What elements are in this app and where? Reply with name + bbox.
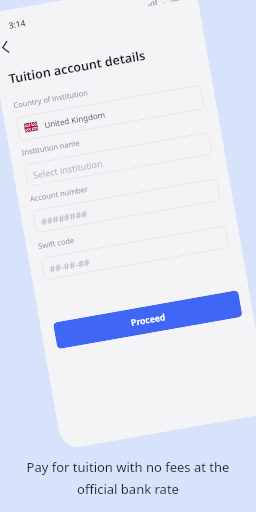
- button[interactable]: ########: [32, 178, 221, 233]
- staticText: Pay for tuition with no fees at the offi…: [0, 458, 256, 498]
- button[interactable]: Select institution: [24, 132, 213, 187]
- staticText: Proceed: [130, 311, 167, 329]
- staticText: Account number: [29, 184, 89, 204]
- staticText: ########: [40, 207, 88, 227]
- button[interactable]: United Kingdom: [15, 84, 205, 142]
- staticText: 3:14: [8, 17, 26, 32]
- button[interactable]: ##-##-##: [40, 225, 229, 280]
- button[interactable]: Back: [0, 35, 17, 59]
- button[interactable]: Proceed: [53, 290, 243, 349]
- staticText: Institution name: [21, 137, 81, 157]
- staticText: Swift code: [37, 235, 76, 251]
- staticText: Select institution: [32, 157, 104, 181]
- staticText: ##-##-##: [48, 255, 91, 274]
- staticText: United Kingdom: [43, 108, 106, 130]
- staticText: Tuition account details: [7, 47, 147, 87]
- staticText: Country of institution: [13, 87, 89, 110]
